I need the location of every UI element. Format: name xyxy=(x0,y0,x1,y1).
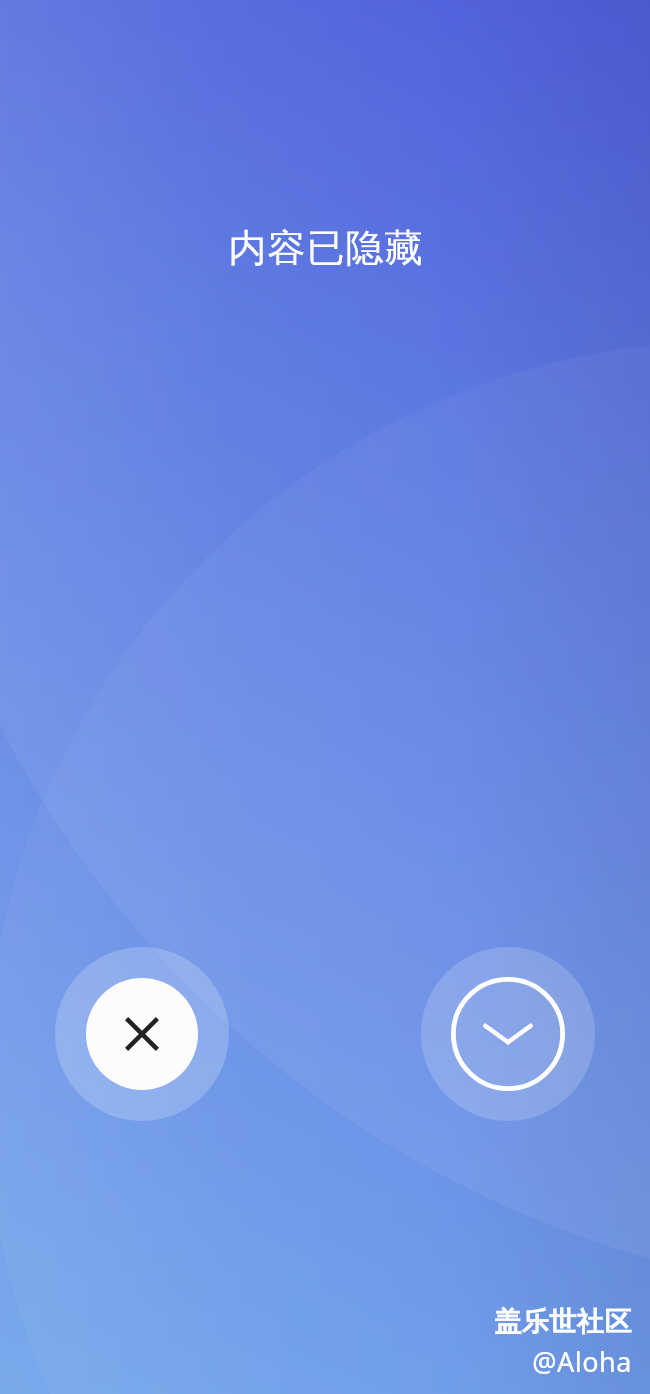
staticText: 内容已隐藏 xyxy=(228,224,423,272)
button[interactable]: Dismiss xyxy=(55,947,229,1121)
staticText: @Aloha xyxy=(532,1343,632,1380)
button[interactable]: Expand xyxy=(421,947,595,1121)
staticText: 盖乐世社区 xyxy=(494,1305,632,1339)
